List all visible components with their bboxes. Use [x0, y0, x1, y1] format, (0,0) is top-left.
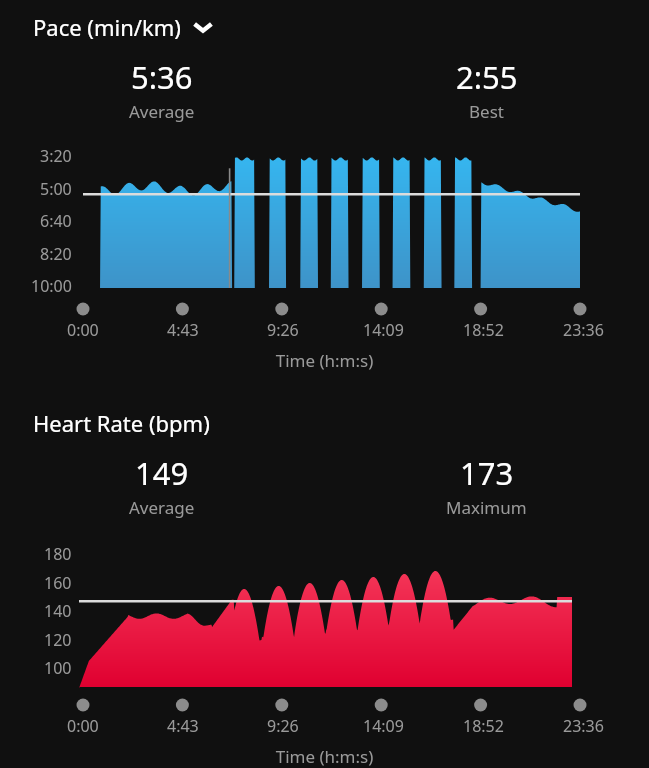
staticText: Maximum [446, 496, 527, 519]
staticText: 180 [44, 543, 72, 565]
staticText: Time (h:m:s) [0, 349, 649, 372]
staticText: 120 [44, 629, 72, 651]
staticText: 23:36 [563, 319, 604, 341]
staticText: 9:26 [267, 319, 299, 341]
staticText: 4:43 [167, 715, 199, 737]
staticText: 0:00 [67, 715, 99, 737]
button[interactable]: 149 [0, 452, 324, 519]
staticText: Pace (min/km) [33, 12, 181, 42]
staticText: 100 [44, 657, 72, 679]
staticText: 9:26 [267, 715, 299, 737]
button[interactable]: Pace (min/km) [33, 12, 213, 42]
staticText: Best [469, 100, 504, 123]
staticText: Average [129, 100, 195, 123]
staticText: 173 [460, 452, 514, 494]
staticText: 23:36 [563, 715, 604, 737]
staticText: 18:52 [463, 715, 504, 737]
button[interactable]: 2:55 [324, 56, 649, 123]
staticText: 18:52 [463, 319, 504, 341]
button[interactable]: 173 [324, 452, 649, 519]
button[interactable]: Heart Rate (bpm) [33, 408, 210, 438]
staticText: 14:09 [363, 715, 404, 737]
staticText: 2:55 [456, 56, 518, 98]
button[interactable]: 5:36 [0, 56, 324, 123]
staticText: 5:00 [40, 178, 72, 200]
staticText: 140 [44, 600, 72, 622]
staticText: 5:36 [131, 56, 193, 98]
other: Expand metric selector [193, 20, 213, 34]
staticText: 149 [135, 452, 189, 494]
staticText: 8:20 [40, 243, 72, 265]
staticText: 0:00 [67, 319, 99, 341]
staticText: 6:40 [40, 210, 72, 232]
staticText: 10:00 [31, 275, 72, 297]
staticText: 160 [44, 572, 72, 594]
staticText: Average [129, 496, 195, 519]
staticText: Time (h:m:s) [0, 745, 649, 768]
staticText: 14:09 [363, 319, 404, 341]
staticText: 4:43 [167, 319, 199, 341]
staticText: 3:20 [40, 145, 72, 167]
